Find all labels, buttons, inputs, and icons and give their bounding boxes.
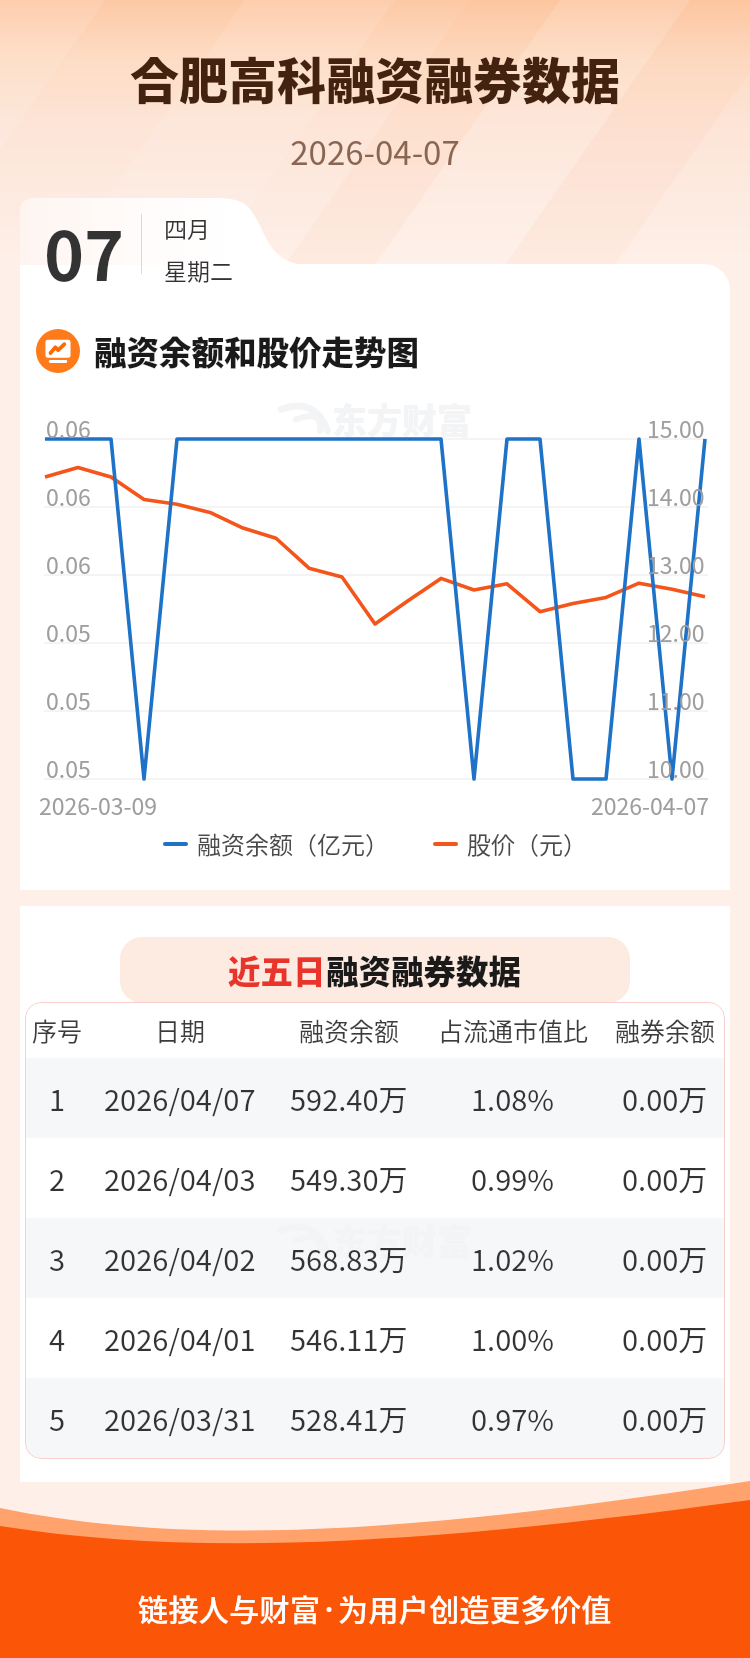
button[interactable]: 07 [44,202,125,300]
staticText: 5 [49,1397,66,1439]
staticText: 0.00万 [622,1077,708,1119]
staticText: 568.83万 [290,1237,408,1279]
staticText: 0.00万 [622,1237,708,1279]
staticText: 2026-04-07 [591,788,710,821]
staticText: 融资余额 [299,1012,400,1048]
staticText: 0.97% [471,1397,555,1439]
staticText: 合肥高科融资融券数据 [0,42,750,113]
staticText: 1.02% [471,1237,555,1279]
staticText: 1 [49,1077,66,1119]
other: 走势图 [36,329,80,373]
staticText: 2026/04/03 [104,1157,256,1199]
staticText: 占流通市值比 [438,1012,589,1048]
staticText: 融券余额 [615,1012,716,1048]
staticText: 592.40万 [290,1077,408,1119]
staticText: 13.00 [647,547,705,580]
button[interactable]: 2 [25,1138,725,1218]
button[interactable]: 3 [25,1218,725,1298]
staticText: 东方财富 [332,1214,473,1265]
staticText: 2026-04-07 [0,127,750,175]
staticText: 融资余额和股价走势图 [94,327,420,374]
staticText: 528.41万 [290,1397,408,1439]
button[interactable]: 股价（元） [433,826,587,861]
staticText: 3 [49,1237,66,1279]
staticText: 四月 [164,211,210,244]
staticText: 0.05 [46,683,91,716]
staticText: 0.06 [46,411,91,444]
button[interactable]: 4 [25,1298,725,1378]
staticText: 0.06 [46,479,91,512]
staticText: 0.06 [46,547,91,580]
staticText: 链接人与财富·为用户创造更多价值 [138,1586,612,1629]
staticText: 日期 [155,1012,206,1048]
staticText: 14.00 [647,479,705,512]
staticText: 549.30万 [290,1157,408,1199]
staticText: 近五日 [228,946,326,993]
staticText: 序号 [32,1012,83,1048]
staticText: 股价（元） [467,826,587,861]
staticText: 12.00 [647,615,705,648]
staticText: 0.99% [471,1157,555,1199]
staticText: 0.05 [46,615,91,648]
staticText: 546.11万 [290,1317,408,1359]
button[interactable]: 序号 [25,1002,725,1058]
button[interactable]: 走势图 [36,327,420,374]
staticText: 0.00万 [622,1397,708,1439]
staticText: 融资融券数据 [326,946,522,993]
staticText: 07 [44,202,125,300]
staticText: 东方财富 [332,393,473,444]
staticText: 0.00万 [622,1157,708,1199]
staticText: 1.08% [471,1077,555,1119]
staticText: 0.00万 [622,1317,708,1359]
staticText: 2026/04/02 [104,1237,256,1279]
button[interactable]: 5 [25,1378,725,1458]
staticText: 15.00 [647,411,705,444]
staticText: 2026-03-09 [39,788,158,821]
staticText: 11.00 [647,683,705,716]
staticText: 星期二 [164,253,233,286]
staticText: 融资余额（亿元） [197,826,389,861]
staticText: 0.05 [46,751,91,784]
staticText: 2026/03/31 [104,1397,256,1439]
staticText: 2 [49,1157,66,1199]
staticText: 4 [49,1317,66,1359]
staticText: 1.00% [471,1317,555,1359]
staticText: 10.00 [647,751,705,784]
button[interactable]: 1 [25,1058,725,1138]
button[interactable]: 融资余额（亿元） [163,826,389,861]
staticText: 2026/04/07 [104,1077,256,1119]
staticText: 2026/04/01 [104,1317,256,1359]
